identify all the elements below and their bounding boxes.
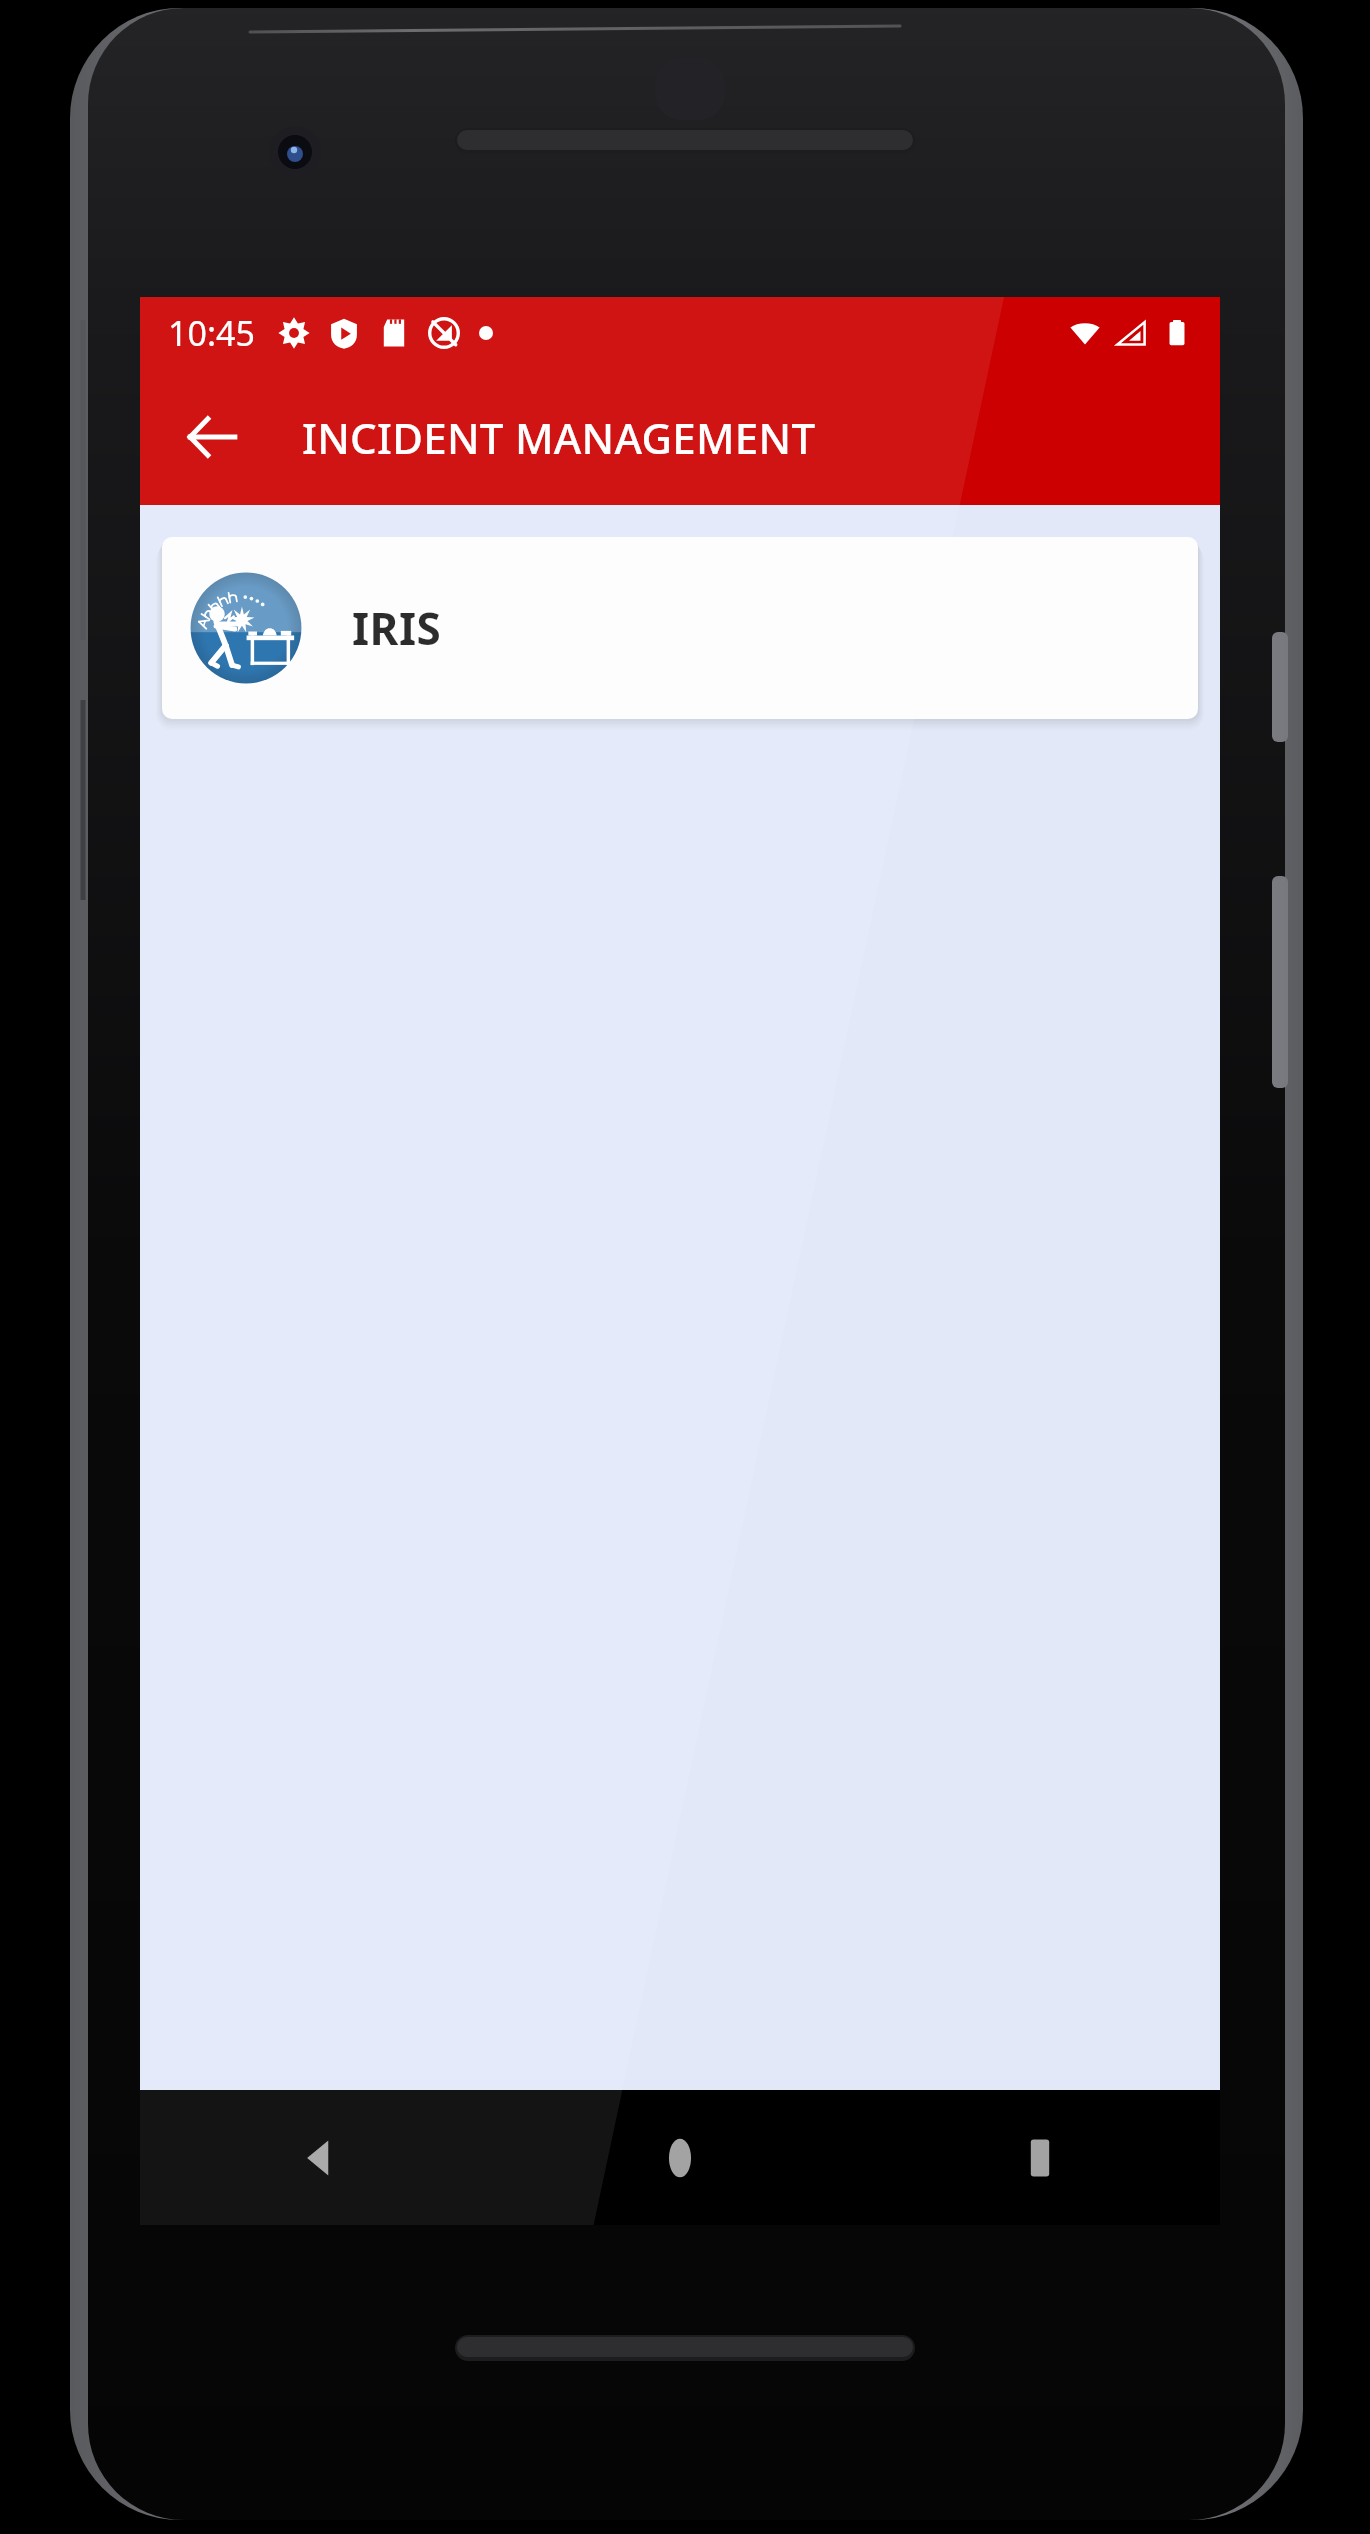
staticText: 10:45 — [168, 310, 255, 356]
button[interactable]: Home — [500, 2090, 860, 2225]
button[interactable]: Back — [140, 2090, 500, 2225]
staticText: INCIDENT MANAGEMENT — [302, 409, 816, 466]
staticText: IRIS — [352, 598, 442, 658]
button[interactable]: Recent apps — [860, 2090, 1220, 2225]
button[interactable]: Back — [164, 389, 260, 485]
button[interactable]: IRIS — [162, 537, 1198, 719]
